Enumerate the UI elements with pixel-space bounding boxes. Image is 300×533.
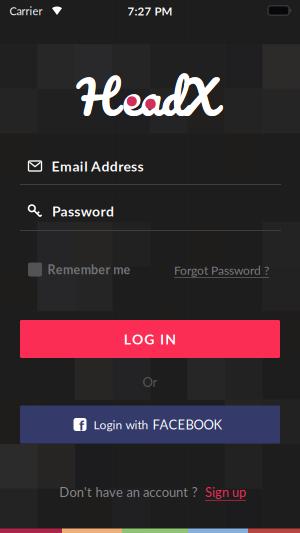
staticText: Password <box>52 203 114 219</box>
staticText: f <box>79 417 84 433</box>
staticText: Email Address <box>52 158 143 174</box>
staticText: HeadX <box>77 57 216 136</box>
staticText: Or <box>142 374 157 390</box>
staticText: Don't have an account ? <box>59 484 198 500</box>
staticText: HeadX <box>77 56 216 136</box>
staticText: Login with <box>93 417 148 432</box>
staticText: HeadX <box>78 57 217 136</box>
staticText: Remember me <box>47 262 130 277</box>
staticText: Sign up <box>205 484 246 500</box>
staticText: Carrier <box>9 4 42 18</box>
staticText: Forgot Password ? <box>174 263 269 277</box>
staticText: FACEBOOK <box>152 417 222 432</box>
staticText: HeadX <box>78 56 217 136</box>
staticText: LOG IN <box>124 331 176 347</box>
staticText: 7:27 PM <box>127 4 172 18</box>
